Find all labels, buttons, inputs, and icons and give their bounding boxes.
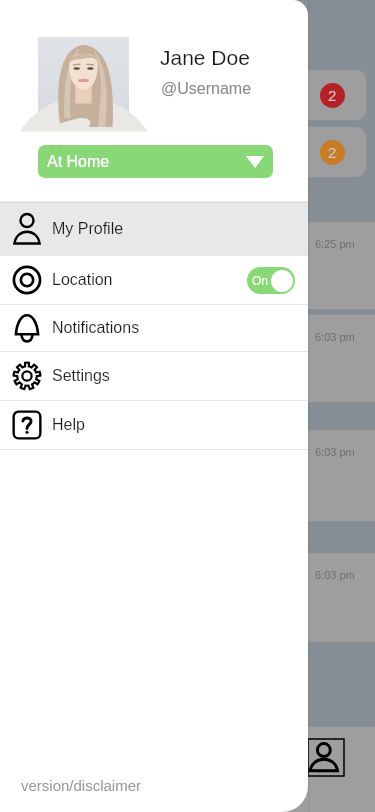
staticText: At Home bbox=[47, 153, 110, 171]
button[interactable]: Notifications bbox=[0, 305, 308, 351]
button[interactable]: 2 bbox=[16, 127, 366, 177]
staticText: Settings bbox=[52, 367, 110, 385]
staticText: @Username bbox=[161, 80, 252, 98]
staticText: 6:03 pm bbox=[315, 331, 355, 343]
staticText: My Profile bbox=[52, 220, 124, 238]
staticText: Jane Doe bbox=[160, 46, 250, 69]
button[interactable]: 6:03 pm bbox=[0, 430, 375, 521]
button[interactable]: 6:03 pm bbox=[0, 315, 375, 402]
button[interactable]: 6:03 pm bbox=[0, 553, 375, 642]
button[interactable]: At Home bbox=[38, 145, 273, 178]
staticText: 6:25 pm bbox=[315, 238, 355, 250]
staticText: 2 bbox=[328, 144, 337, 161]
button[interactable]: Settings bbox=[0, 352, 308, 400]
button[interactable]: Profile bbox=[308, 739, 344, 776]
staticText: Help bbox=[52, 416, 85, 434]
button[interactable]: My Profile bbox=[0, 203, 308, 255]
button[interactable]: 6:25 pm bbox=[0, 222, 375, 309]
staticText: On bbox=[252, 274, 269, 287]
staticText: Notifications bbox=[52, 319, 140, 337]
staticText: version/disclaimer bbox=[21, 777, 142, 794]
button[interactable]: On bbox=[247, 267, 295, 294]
button[interactable]: Location bbox=[0, 256, 308, 304]
staticText: 2 bbox=[328, 87, 337, 104]
staticText: 6:03 pm bbox=[315, 446, 355, 458]
button[interactable]: Help bbox=[0, 401, 308, 449]
staticText: 6:03 pm bbox=[315, 569, 355, 581]
staticText: Location bbox=[52, 271, 113, 289]
button[interactable]: 2 bbox=[16, 70, 366, 120]
